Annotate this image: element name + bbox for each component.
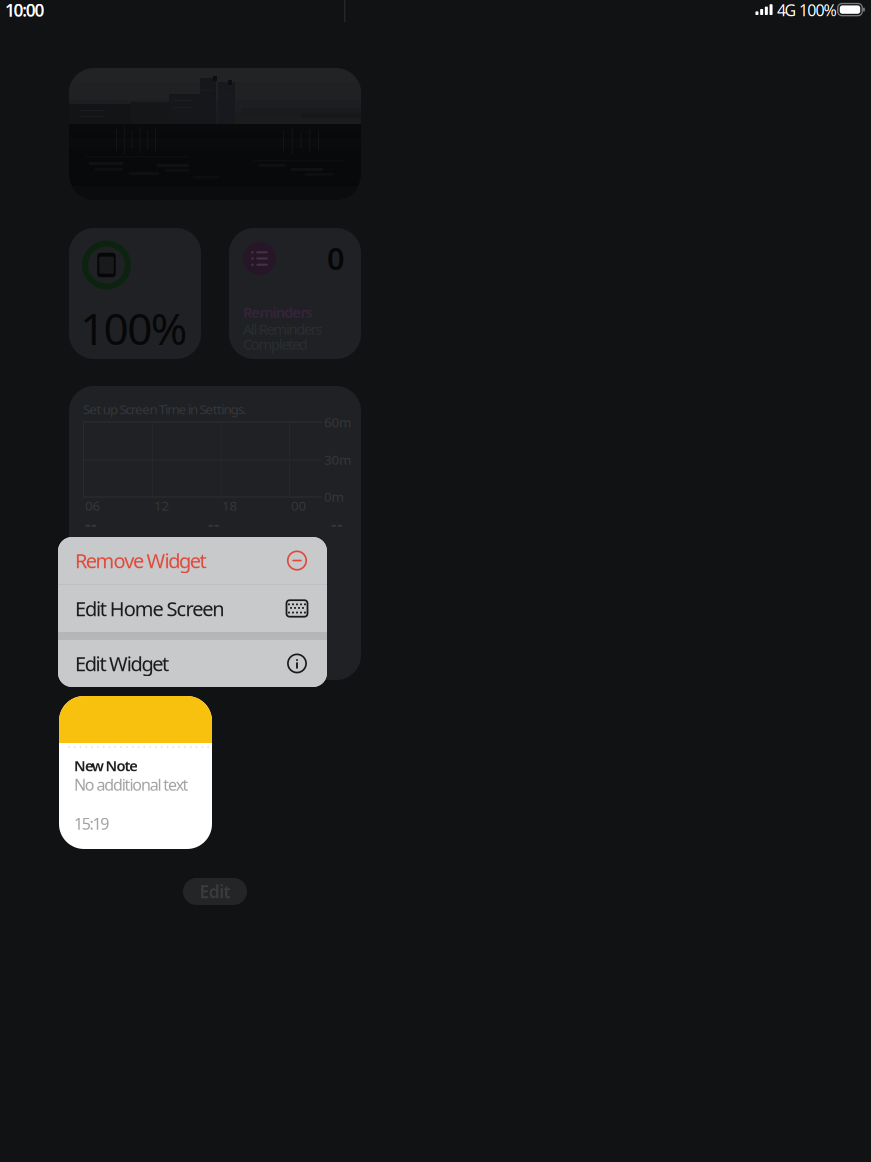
staticText: 12 [154,497,169,514]
staticText: 100% [80,299,188,357]
staticText: Completed [243,334,308,354]
staticText: 100% [799,0,837,21]
staticText: Reminders [243,302,313,322]
staticText: 15:19 [74,813,109,834]
staticText: New Note [74,756,138,775]
staticText: 30m [324,451,351,468]
staticText: Edit Home Screen [75,595,224,622]
staticText: All Reminders [243,319,322,339]
staticText: 00 [291,497,306,514]
button[interactable]: Edit Widget [58,640,327,687]
staticText: -- [208,512,220,535]
staticText: Remove Widget [75,547,207,574]
staticText: Set up Screen Time in Settings. [83,400,247,418]
staticText: 4G [777,0,796,21]
staticText: Edit Widget [75,650,169,677]
button[interactable]: Remove Widget [58,537,327,584]
staticText: No additional text [74,774,189,795]
staticText: 10:00 [5,0,44,21]
staticText: -- [331,512,343,535]
staticText: 0 [327,238,345,278]
button[interactable]: Edit [183,878,247,905]
staticText: 06 [85,497,100,514]
staticText: Edit [199,880,231,903]
staticText: 18 [222,497,237,514]
staticText: 0m [324,488,343,505]
button[interactable]: Edit Home Screen [58,585,327,632]
staticText: -- [85,512,97,535]
staticText: 60m [324,413,351,431]
